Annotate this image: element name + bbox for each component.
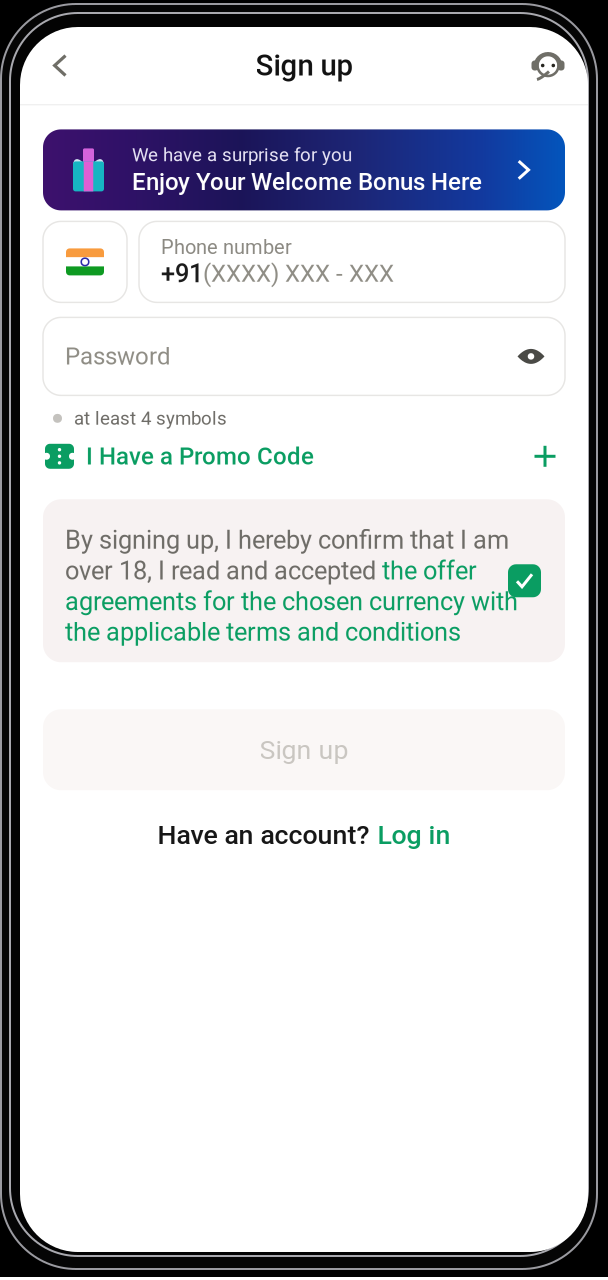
button[interactable]: Log in	[369, 819, 450, 851]
staticText: +91	[161, 259, 203, 288]
staticText: (XXXX) XXX - XXX	[203, 260, 394, 288]
staticText: By signing up, I hereby confirm that I a…	[65, 525, 509, 555]
staticText: the applicable terms and conditions	[65, 617, 461, 647]
button[interactable]: I Have a Promo Code	[43, 433, 565, 479]
staticText: at least 4 symbols	[74, 407, 227, 429]
staticText: Sign up	[255, 48, 352, 83]
staticText: Log in	[377, 819, 450, 851]
staticText: over 18, I read and accepted	[65, 556, 382, 586]
staticText: Password	[65, 342, 171, 370]
button[interactable]: Support	[523, 37, 573, 93]
staticText: Phone number	[161, 235, 292, 259]
staticText: We have a surprise for you	[132, 144, 352, 166]
staticText: Have an account?	[157, 819, 369, 851]
staticText: Sign up	[259, 734, 348, 765]
button[interactable]: Back	[35, 37, 85, 93]
staticText: agreements for the chosen currency with	[65, 587, 518, 616]
button[interactable]: We have a surprise for you	[43, 129, 565, 210]
staticText: I Have a Promo Code	[86, 442, 314, 470]
button[interactable]: Sign up	[43, 709, 565, 790]
button[interactable]: Show password	[517, 346, 545, 366]
button[interactable]: Select country	[43, 221, 127, 302]
staticText: the offer	[382, 556, 477, 586]
staticText: Enjoy Your Welcome Bonus Here	[132, 168, 482, 196]
